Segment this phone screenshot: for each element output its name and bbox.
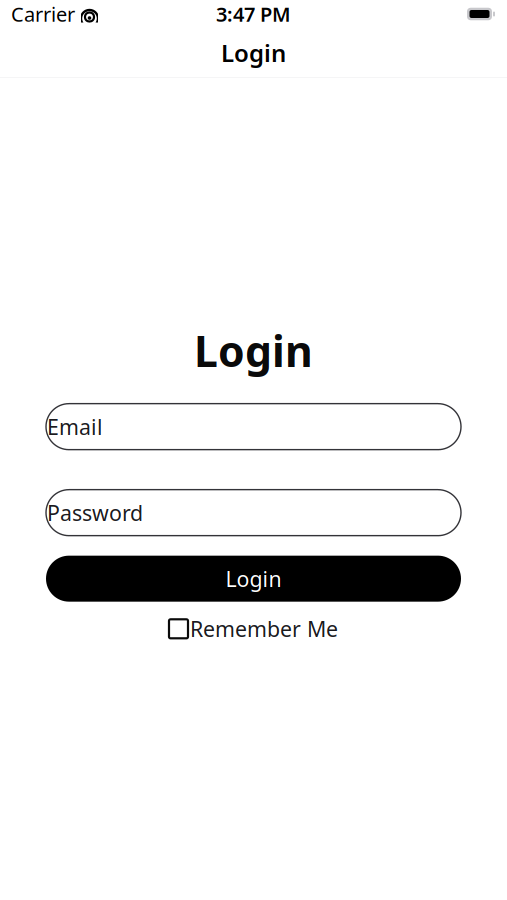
- staticText: Login: [225, 564, 281, 593]
- staticText: Password: [47, 498, 143, 527]
- staticText: Carrier: [11, 1, 75, 27]
- staticText: Email: [47, 412, 103, 441]
- button[interactable]: Email: [46, 404, 461, 450]
- button[interactable]: Remember Me: [169, 615, 338, 643]
- staticText: 3:47 PM: [216, 1, 291, 27]
- staticText: Login: [194, 322, 313, 379]
- button[interactable]: Password: [46, 490, 461, 536]
- staticText: Login: [221, 37, 286, 69]
- staticText: Remember Me: [190, 615, 338, 643]
- button[interactable]: Login: [46, 556, 461, 602]
